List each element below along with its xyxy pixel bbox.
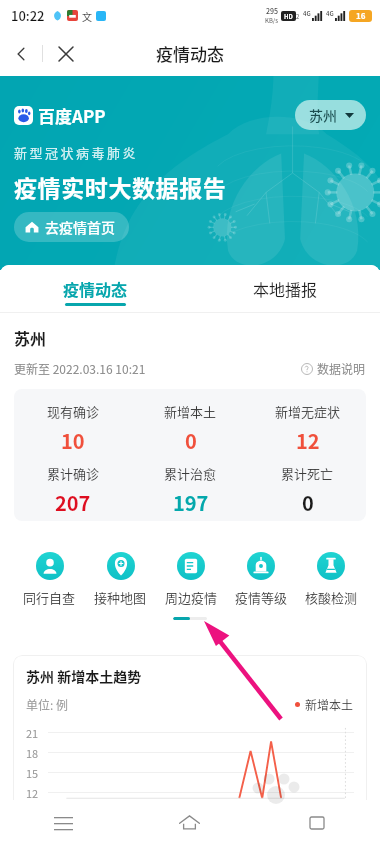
staticText: 累计死亡 xyxy=(281,464,334,483)
button[interactable]: Menu xyxy=(0,800,126,845)
staticText: 新型冠状病毒肺炎 xyxy=(14,143,139,162)
button[interactable]: 疫情等级 xyxy=(226,552,296,607)
button[interactable]: 本地播报 xyxy=(190,265,380,313)
staticText: KB/s xyxy=(265,16,278,25)
staticText: 12 xyxy=(296,426,320,455)
staticText: 新增无症状 xyxy=(275,402,341,421)
button[interactable]: Home xyxy=(126,800,253,845)
staticText: 10 xyxy=(61,426,85,455)
staticText: 疫情等级 xyxy=(235,588,288,607)
button[interactable]: 去疫情首页 xyxy=(14,212,129,242)
staticText: 现有确诊 xyxy=(47,402,100,421)
staticText: 接种地图 xyxy=(94,588,147,607)
staticText: 更新至 2022.03.16 10:21 xyxy=(14,360,146,377)
button[interactable]: Recents xyxy=(253,800,380,845)
staticText: 文 xyxy=(82,9,92,23)
button[interactable]: Back xyxy=(0,31,42,76)
staticText: 2 xyxy=(296,12,300,21)
staticText: 本地播报 xyxy=(253,277,318,300)
button[interactable]: 累计确诊 xyxy=(14,464,132,517)
staticText: 4G xyxy=(303,9,311,18)
staticText: 197 xyxy=(173,488,209,517)
staticText: 15 xyxy=(26,765,46,781)
button[interactable]: 累计治愈 xyxy=(132,464,249,517)
staticText: 核酸检测 xyxy=(305,588,358,607)
button[interactable]: 同行自查 xyxy=(14,552,85,607)
button[interactable]: 新增本土 xyxy=(132,402,249,455)
staticText: 苏州 xyxy=(309,105,337,125)
button[interactable]: 数据说明 xyxy=(301,360,366,377)
staticText: 新增本土 xyxy=(305,696,354,713)
staticText: 去疫情首页 xyxy=(45,217,115,237)
staticText: 疫情动态 xyxy=(63,277,128,300)
staticText: 单位: 例 xyxy=(26,696,69,713)
button[interactable]: 现有确诊 xyxy=(14,402,132,455)
staticText: 同行自查 xyxy=(23,588,76,607)
staticText: 16 xyxy=(356,10,366,22)
button[interactable]: 核酸检测 xyxy=(296,552,366,607)
button[interactable]: 疫情动态 xyxy=(0,265,190,313)
button[interactable]: 苏州 xyxy=(295,100,366,130)
staticText: 12 xyxy=(26,785,46,801)
staticText: 周边疫情 xyxy=(165,588,218,607)
staticText: 18 xyxy=(26,745,46,761)
staticText: HD xyxy=(284,12,293,21)
staticText: 0 xyxy=(302,488,314,517)
staticText: 苏州 新增本土趋势 xyxy=(26,666,142,686)
staticText: 数据说明 xyxy=(317,360,366,377)
staticText: 207 xyxy=(55,488,91,517)
staticText: 10:22 xyxy=(11,6,45,25)
staticText: 新增本土 xyxy=(164,402,217,421)
staticText: 4G xyxy=(326,9,334,18)
staticText: 累计确诊 xyxy=(47,464,100,483)
staticText: 295 xyxy=(266,6,278,16)
button[interactable]: 周边疫情 xyxy=(156,552,226,607)
staticText: 疫情动态 xyxy=(156,41,224,66)
button[interactable]: 累计死亡 xyxy=(249,464,366,517)
staticText: 百度APP xyxy=(38,103,106,128)
staticText: 累计治愈 xyxy=(164,464,217,483)
staticText: 苏州 xyxy=(14,326,47,349)
staticText: 0 xyxy=(185,426,197,455)
button[interactable]: 接种地图 xyxy=(85,552,156,607)
button[interactable]: 新增无症状 xyxy=(249,402,366,455)
staticText: 21 xyxy=(26,725,46,741)
button[interactable]: Close xyxy=(43,31,89,76)
staticText: 疫情实时大数据报告 xyxy=(14,170,227,203)
